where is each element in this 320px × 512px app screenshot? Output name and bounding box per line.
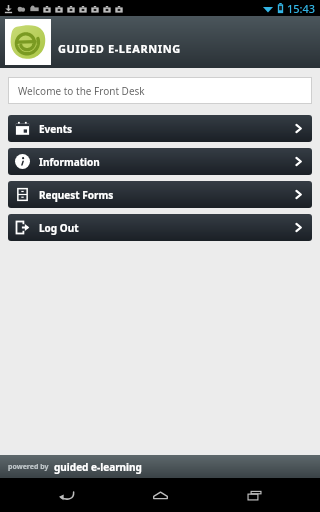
staticText: GUIDED E-LEARNING: [58, 41, 181, 56]
button[interactable]: Information: [8, 148, 312, 175]
staticText: guided e-learning: [54, 460, 142, 474]
button[interactable]: Request Forms: [8, 181, 312, 208]
button[interactable]: Events: [8, 115, 312, 142]
staticText: Log Out: [39, 221, 79, 235]
button[interactable]: Recent apps: [226, 478, 282, 512]
staticText: Welcome to the Front Desk: [18, 84, 145, 98]
staticText: Request Forms: [39, 188, 114, 202]
staticText: powered by: [8, 462, 49, 472]
button[interactable]: Home: [132, 478, 188, 512]
staticText: Events: [39, 122, 73, 136]
staticText: Information: [39, 155, 100, 169]
button[interactable]: Back: [38, 478, 94, 512]
staticText: 15:43: [287, 1, 316, 16]
button[interactable]: Log Out: [8, 214, 312, 241]
